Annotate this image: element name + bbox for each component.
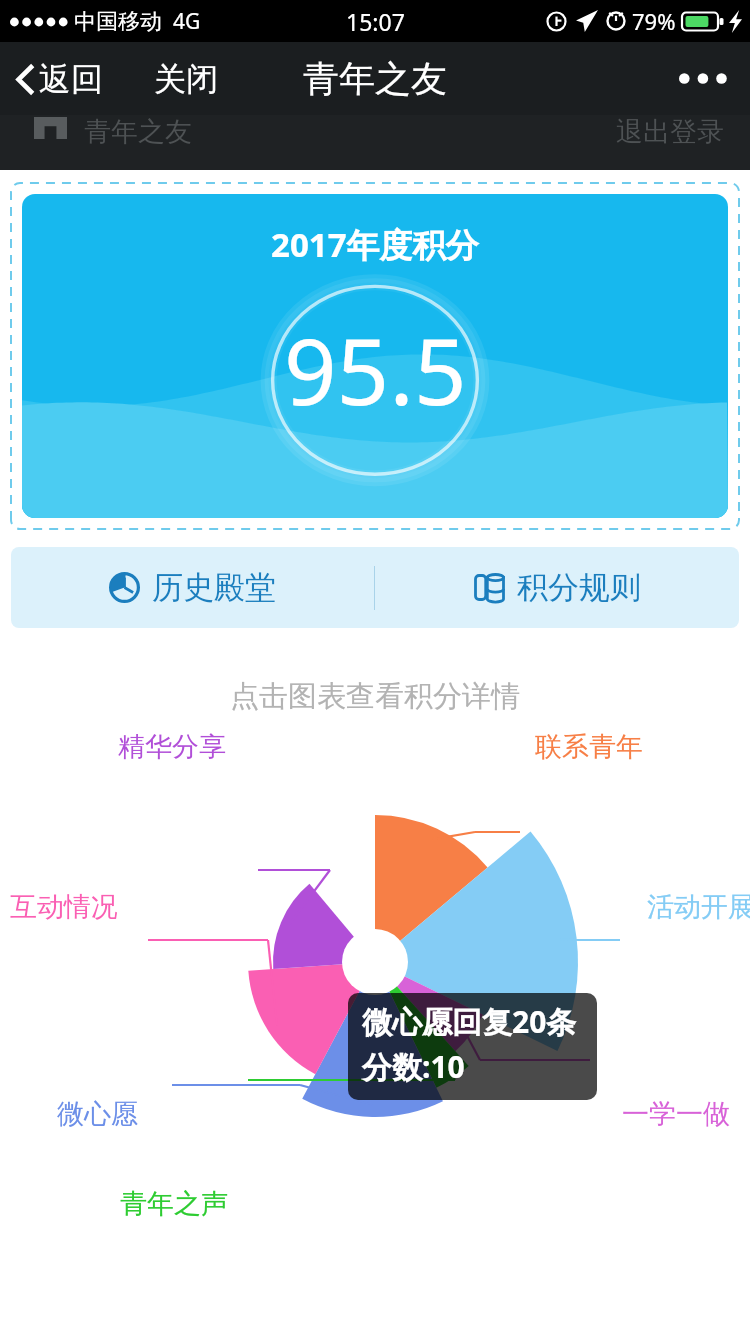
staticText: 返回 [39, 59, 103, 99]
staticText: 2017年度积分 [271, 222, 479, 267]
staticText: 历史殿堂 [152, 568, 276, 607]
staticText: 点击图表查看积分详情 [0, 678, 750, 715]
staticText: 联系青年 [535, 730, 643, 764]
staticText: 79% [632, 6, 676, 36]
staticText: 退出登录 [616, 115, 724, 149]
staticText: 关闭 [154, 59, 218, 99]
button[interactable]: 关闭 [144, 47, 228, 111]
staticText: 活动开展 [647, 890, 750, 924]
button[interactable]: 返回 [0, 47, 113, 111]
button[interactable]: 2017年度积分 [22, 194, 728, 518]
staticText: 青年之友 [303, 56, 447, 101]
staticText: 青年之友 [84, 115, 192, 149]
staticText: 精华分享 [118, 730, 226, 764]
button[interactable]: 积分规则 [375, 547, 739, 628]
staticText: 中国移动 [74, 8, 162, 36]
staticText: 微心愿 [57, 1097, 138, 1131]
button[interactable]: More options [657, 53, 750, 104]
staticText: 积分规则 [517, 568, 641, 607]
staticText: 95.5 [284, 307, 467, 432]
staticText: 分数:10 [362, 1046, 465, 1087]
staticText: 微心愿回复20条 [362, 1001, 577, 1042]
staticText: 一学一做 [622, 1097, 730, 1131]
staticText: 青年之声 [120, 1187, 228, 1221]
staticText: 15:07 [346, 6, 405, 37]
staticText: 互动情况 [10, 890, 118, 924]
staticText: 4G [173, 7, 201, 36]
button[interactable]: 联系青年 [0, 715, 750, 1334]
button[interactable]: 历史殿堂 [11, 547, 374, 628]
